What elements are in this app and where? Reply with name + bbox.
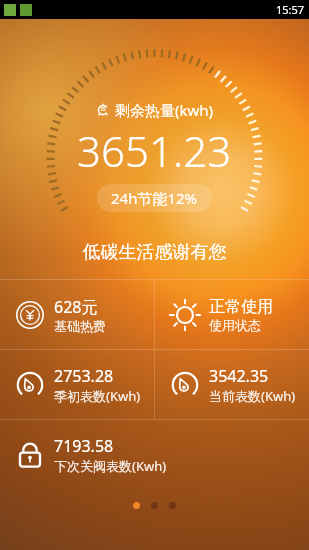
button[interactable]: 3542.35: [155, 350, 309, 419]
staticText: 2753.28: [54, 365, 114, 387]
staticText: 季初表数(Kwh): [54, 387, 141, 405]
staticText: 下次关阀表数(Kwh): [54, 457, 167, 475]
staticText: 正常使用: [209, 297, 273, 317]
staticText: 628元: [54, 296, 98, 318]
button[interactable]: 24h节能12%: [97, 184, 212, 212]
staticText: 15:57: [276, 2, 305, 17]
staticText: 低碳生活感谢有您: [0, 241, 309, 264]
staticText: 当前表数(Kwh): [209, 387, 296, 405]
button[interactable]: 2753.28: [0, 350, 154, 419]
staticText: 24h节能12%: [111, 188, 198, 208]
staticText: 剩余热量(kwh): [115, 100, 214, 120]
staticText: 使用状态: [209, 317, 261, 333]
button[interactable]: 7193.58: [0, 420, 309, 489]
button[interactable]: 正常使用: [155, 280, 309, 349]
staticText: 3651.23: [77, 122, 232, 179]
staticText: 基础热费: [54, 318, 106, 334]
staticText: 7193.58: [54, 435, 114, 457]
button[interactable]: 628元: [0, 280, 154, 349]
staticText: 3542.35: [209, 365, 269, 387]
